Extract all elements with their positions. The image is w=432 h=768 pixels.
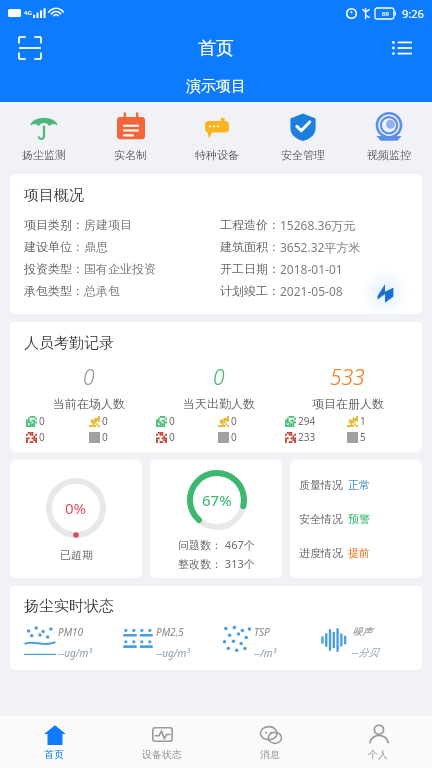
staticText: 233 <box>298 430 316 444</box>
staticText: 项目在册人数 <box>312 396 384 411</box>
staticText: TSP <box>254 625 270 639</box>
staticText: 投资类型： <box>24 261 84 276</box>
button[interactable]: 首页 <box>0 716 108 768</box>
button[interactable]: 安全管理 <box>260 109 346 164</box>
staticText: --ug/m³ <box>58 646 92 660</box>
button[interactable]: 特种设备 <box>174 109 260 164</box>
staticText: --分贝 <box>352 645 379 659</box>
staticText: 安全情况 <box>299 512 343 526</box>
staticText: 国有企业投资 <box>84 261 156 276</box>
staticText: 0 <box>231 430 237 444</box>
button[interactable]: 悬浮入口 <box>360 268 410 318</box>
staticText: 预警 <box>348 512 370 526</box>
staticText: 当天出勤人数 <box>183 396 255 411</box>
staticText: 建设单位： <box>24 239 84 254</box>
button[interactable]: 人员考勤记录 <box>10 322 422 452</box>
staticText: 项目概况 <box>24 186 84 205</box>
staticText: 安全管理 <box>281 148 325 162</box>
staticText: PM10 <box>58 625 84 639</box>
staticText: 人员考勤记录 <box>24 334 114 353</box>
button[interactable]: 67% <box>150 460 282 578</box>
staticText: 69 <box>382 10 389 18</box>
button[interactable]: 噪声 <box>318 625 416 659</box>
staticText: 开工日期： <box>220 261 280 276</box>
staticText: 4G <box>24 9 32 17</box>
button[interactable]: 扫一扫 <box>10 28 50 68</box>
staticText: 鼎思 <box>84 239 108 254</box>
staticText: 5 <box>360 430 366 444</box>
staticText: 2021-05-08 <box>280 283 343 299</box>
button[interactable]: 菜单 <box>382 28 422 68</box>
staticText: 设备状态 <box>142 748 182 761</box>
button[interactable]: 扬尘实时状态 <box>10 586 422 670</box>
staticText: 扬尘监测 <box>22 148 66 162</box>
staticText: 9:26 <box>402 6 424 21</box>
staticText: 0 <box>169 430 175 444</box>
staticText: 0 <box>169 414 175 428</box>
staticText: 特种设备 <box>195 148 239 162</box>
staticText: 15268.36万元 <box>280 217 356 233</box>
staticText: 扬尘实时状态 <box>24 597 114 616</box>
staticText: 67% <box>202 490 232 510</box>
staticText: 0 <box>83 363 95 392</box>
staticText: PM2.5 <box>156 625 184 639</box>
button[interactable]: TSP <box>220 625 318 660</box>
staticText: 0 <box>213 363 225 392</box>
staticText: 项目类别： <box>24 217 84 232</box>
button[interactable]: 实名制 <box>87 109 174 164</box>
staticText: 3652.32平方米 <box>280 239 361 255</box>
staticText: 视频监控 <box>367 148 411 162</box>
staticText: 首页 <box>44 748 64 761</box>
button[interactable]: 消息 <box>216 716 324 768</box>
staticText: 533 <box>330 363 365 392</box>
staticText: 0 <box>102 414 108 428</box>
button[interactable]: PM10 <box>24 625 122 660</box>
staticText: 消息 <box>260 748 280 761</box>
staticText: 294 <box>298 414 316 428</box>
staticText: 计划竣工： <box>220 283 280 298</box>
staticText: 承包类型： <box>24 283 84 298</box>
staticText: --ug/m³ <box>156 646 190 660</box>
button[interactable]: 设备状态 <box>108 716 216 768</box>
staticText: 质量情况 <box>299 478 343 492</box>
staticText: 0 <box>39 430 45 444</box>
staticText: 0 <box>231 414 237 428</box>
button[interactable]: 个人 <box>324 716 432 768</box>
button[interactable]: PM2.5 <box>122 625 220 660</box>
staticText: 进度情况 <box>299 546 343 560</box>
staticText: 0 <box>102 430 108 444</box>
staticText: 首页 <box>198 37 234 60</box>
staticText: 0% <box>65 498 87 518</box>
staticText: 房建项目 <box>84 217 132 232</box>
staticText: 演示项目 <box>186 77 246 96</box>
staticText: 实名制 <box>114 148 147 162</box>
button[interactable]: 扬尘监测 <box>0 109 87 164</box>
staticText: 噪声 <box>352 625 372 638</box>
staticText: 工程造价： <box>220 217 280 232</box>
staticText: --/m³ <box>254 646 277 660</box>
staticText: 正常 <box>348 478 370 492</box>
staticText: 0 <box>39 414 45 428</box>
staticText: 当前在场人数 <box>53 396 125 411</box>
staticText: 2018-01-01 <box>280 261 343 277</box>
button[interactable]: 0% <box>10 460 142 578</box>
staticText: 建筑面积： <box>220 239 280 254</box>
button[interactable]: 视频监控 <box>346 109 432 164</box>
staticText: 问题数： 467个 <box>178 537 255 552</box>
staticText: 个人 <box>368 748 388 761</box>
staticText: 提前 <box>348 546 370 560</box>
staticText: 总承包 <box>84 283 120 298</box>
button[interactable]: 项目概况 <box>10 174 422 314</box>
button[interactable]: 质量情况 <box>290 460 422 578</box>
staticText: 1 <box>360 414 366 428</box>
staticText: 整改数： 313个 <box>178 556 255 571</box>
staticText: 已超期 <box>60 548 93 562</box>
